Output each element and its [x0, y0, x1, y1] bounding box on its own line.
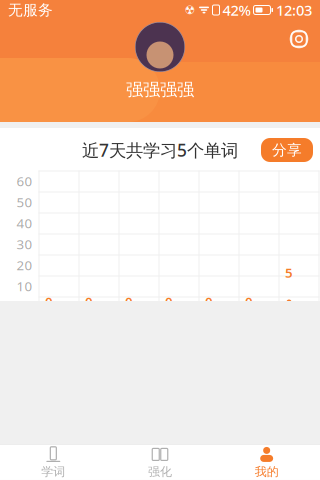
staticText: 0	[24, 298, 32, 316]
button[interactable]: 强化	[107, 445, 213, 480]
staticText: 60	[16, 172, 32, 190]
staticText: 学词	[41, 464, 65, 479]
staticText: 5	[285, 264, 293, 281]
staticText: 0	[245, 293, 253, 310]
staticText: 0	[45, 293, 53, 310]
staticText: 30	[16, 235, 32, 253]
staticText: 分享	[272, 141, 302, 159]
staticText: 12:03	[276, 0, 312, 20]
staticText: 0	[165, 293, 173, 310]
staticText: 当前为最新版本	[197, 433, 309, 453]
staticText: 50	[16, 193, 32, 211]
staticText: 版本更新	[36, 432, 104, 454]
button[interactable]: 版本更新	[0, 425, 320, 461]
button[interactable]: 学词	[0, 445, 107, 480]
staticText: 0	[85, 293, 93, 310]
button[interactable]: 分享	[261, 138, 313, 162]
staticText: 0	[205, 293, 213, 310]
staticText: 10	[16, 277, 32, 295]
button[interactable]: 头像	[135, 22, 185, 72]
staticText: ☢	[184, 3, 195, 17]
button[interactable]: 设置	[282, 22, 316, 56]
staticText: 20	[16, 256, 32, 274]
staticText: 0	[125, 293, 133, 310]
staticText: 40	[16, 214, 32, 232]
staticText: 强强强强	[126, 79, 194, 100]
staticText: 强化	[148, 464, 172, 479]
button[interactable]: 我的	[213, 445, 320, 480]
staticText: 我的	[255, 464, 279, 479]
staticText: 42%	[222, 0, 250, 20]
staticText: 无服务	[8, 1, 53, 19]
staticText: 近7天共学习5个单词	[82, 138, 238, 161]
